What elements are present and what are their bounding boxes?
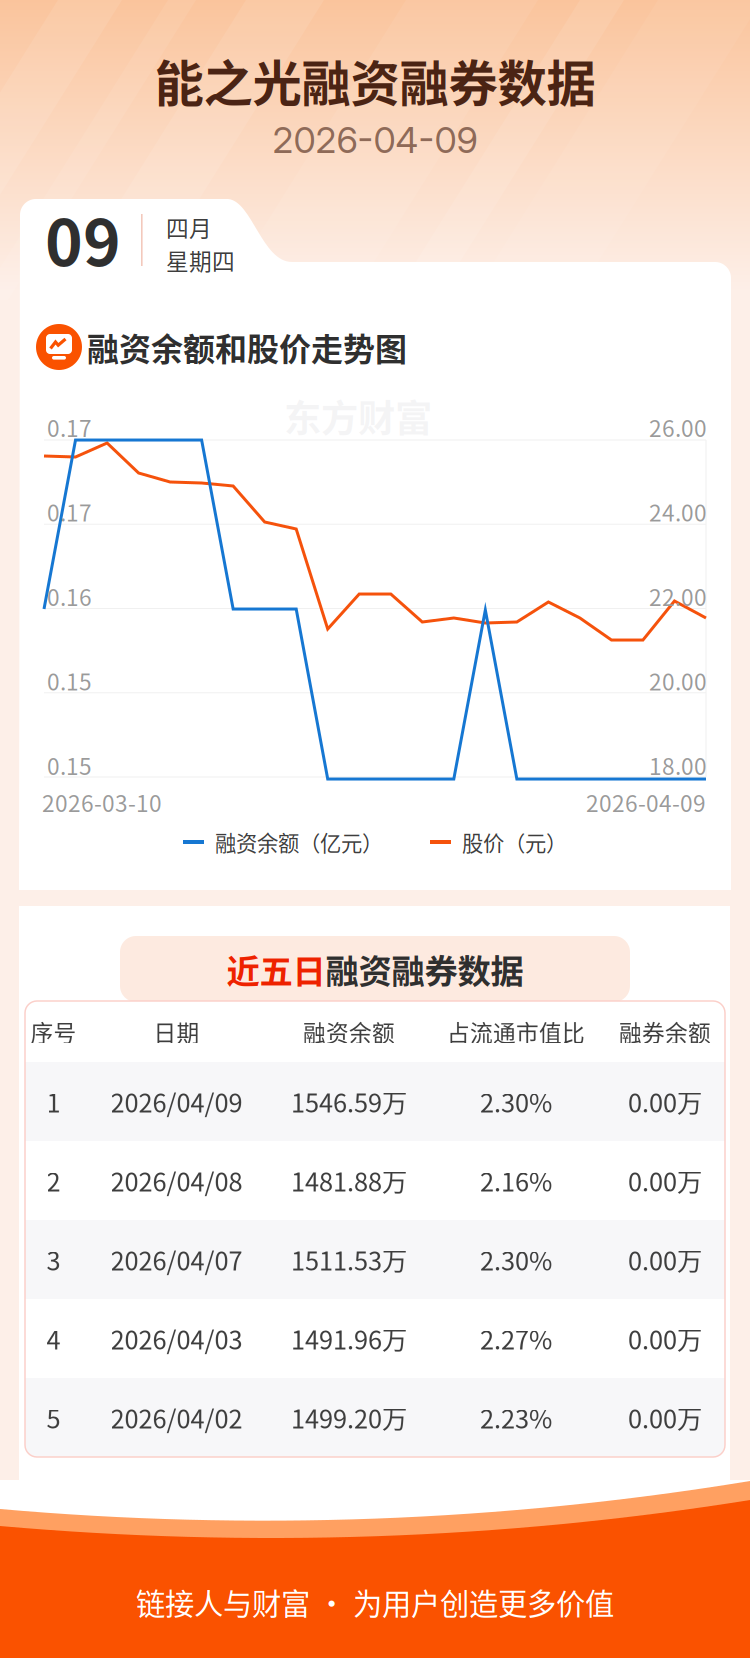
staticText: 1546.59万 [291, 1083, 407, 1120]
staticText: 0.00万 [628, 1399, 702, 1436]
staticText: 融资融券数据 [325, 945, 523, 993]
staticText: 序号 [30, 1015, 76, 1048]
staticText: 2026-03-10 [42, 786, 162, 818]
staticText: 5 [46, 1399, 60, 1436]
staticText: 2026/04/03 [110, 1320, 242, 1357]
staticText: 2.30% [480, 1241, 552, 1278]
staticText: 2 [46, 1162, 60, 1199]
staticText: 0.00万 [628, 1162, 702, 1199]
staticText: 2.30% [480, 1083, 552, 1120]
staticText: 股价（元） [462, 827, 567, 857]
staticText: 日期 [153, 1015, 199, 1048]
staticText: 09 [45, 192, 121, 284]
staticText: 2026/04/09 [110, 1083, 242, 1120]
staticText: 22.00 [649, 580, 707, 612]
staticText: 1481.88万 [291, 1162, 407, 1199]
staticText: 融资余额和股价走势图 [87, 324, 407, 370]
staticText: 1511.53万 [291, 1241, 407, 1278]
staticText: 0.17 [47, 495, 92, 528]
staticText: 2026/04/02 [110, 1399, 242, 1436]
staticText: 东方财富 [284, 389, 432, 443]
staticText: 2026-04-09 [586, 786, 706, 818]
staticText: 能之光融资融券数据 [154, 44, 595, 116]
staticText: 3 [46, 1241, 60, 1278]
staticText: 近五日 [226, 945, 325, 993]
staticText: 2026/04/08 [110, 1162, 242, 1199]
staticText: 0.00万 [628, 1083, 702, 1120]
staticText: 0.00万 [628, 1320, 702, 1357]
staticText: 融资余额（亿元） [215, 827, 383, 857]
staticText: 1 [46, 1083, 60, 1120]
staticText: 0.16 [47, 580, 92, 612]
staticText: 2.16% [480, 1162, 552, 1199]
staticText: 链接人与财富 · 为用户创造更多价值 [136, 1581, 614, 1623]
staticText: 2026-04-09 [272, 118, 477, 162]
staticText: 四月 [166, 211, 212, 243]
staticText: 0.15 [47, 664, 92, 697]
staticText: 4 [46, 1320, 60, 1357]
staticText: 26.00 [649, 411, 707, 443]
staticText: 0.17 [47, 411, 92, 443]
staticText: 0.15 [47, 749, 92, 781]
staticText: 20.00 [649, 664, 707, 697]
staticText: 24.00 [649, 495, 707, 528]
staticText: 融券余额 [619, 1015, 711, 1048]
staticText: 占流通市值比 [447, 1015, 585, 1048]
staticText: 融资余额 [303, 1015, 395, 1048]
staticText: 0.00万 [628, 1241, 702, 1278]
staticText: 18.00 [649, 749, 707, 781]
staticText: 2026/04/07 [110, 1241, 242, 1278]
staticText: 1499.20万 [291, 1399, 407, 1436]
staticText: 2.23% [480, 1399, 552, 1436]
staticText: 星期四 [166, 244, 235, 276]
staticText: 1491.96万 [291, 1320, 407, 1357]
staticText: 2.27% [480, 1320, 552, 1357]
